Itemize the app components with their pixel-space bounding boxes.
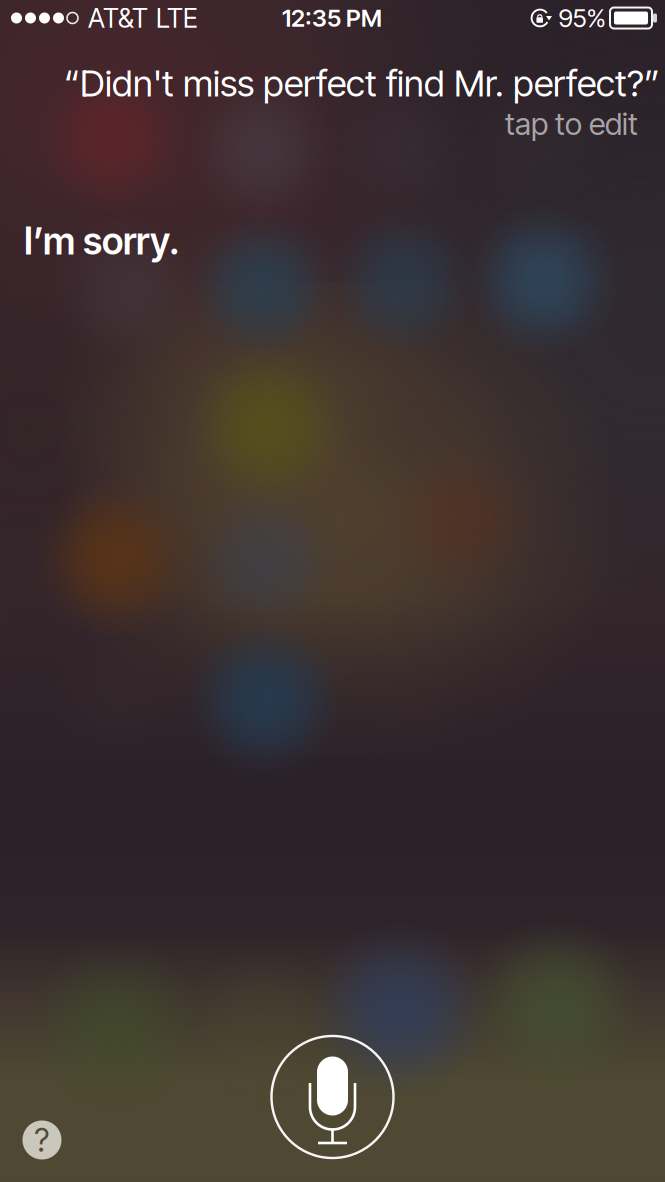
staticText: LTE (156, 2, 198, 34)
button[interactable]: “Didn't miss perfect find Mr. perfect?” (0, 44, 665, 142)
staticText: AT&T (88, 2, 148, 34)
staticText: 12:35 PM (282, 3, 382, 32)
staticText: ? (34, 1121, 49, 1159)
button[interactable]: Speak to Siri (270, 1035, 394, 1159)
staticText: I’m sorry. (24, 218, 180, 263)
button[interactable]: Siri help (20, 1118, 64, 1162)
staticText: 95% (558, 3, 605, 33)
staticText: tap to edit (505, 105, 638, 142)
staticText: “Didn't miss perfect find Mr. perfect?” (64, 61, 660, 105)
